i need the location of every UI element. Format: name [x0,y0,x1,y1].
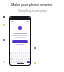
button[interactable] [14,58,15,60]
button[interactable] [20,58,21,60]
button[interactable] [21,52,22,54]
button[interactable] [18,58,19,60]
button[interactable] [13,55,14,57]
staticText: Make your phone smarter [11,3,53,7]
staticText: Everything in one place [18,9,47,13]
other: App logo [18,26,22,30]
button[interactable] [25,55,26,57]
button[interactable] [27,61,30,63]
button[interactable] [17,55,18,57]
button[interactable] [15,55,16,57]
button[interactable] [15,52,16,54]
button[interactable] [29,52,30,54]
button[interactable] [13,52,14,54]
button[interactable] [11,55,12,57]
button[interactable] [19,55,20,57]
button[interactable] [21,55,22,57]
button[interactable] [26,58,27,60]
button[interactable] [22,58,23,60]
button[interactable] [23,52,24,54]
button[interactable] [16,58,17,60]
button[interactable] [12,40,28,43]
button[interactable] [17,52,18,54]
button[interactable] [24,58,25,60]
button[interactable] [27,55,28,57]
button[interactable] [19,52,20,54]
button[interactable] [25,52,26,54]
button[interactable] [27,52,28,54]
button[interactable] [23,55,24,57]
